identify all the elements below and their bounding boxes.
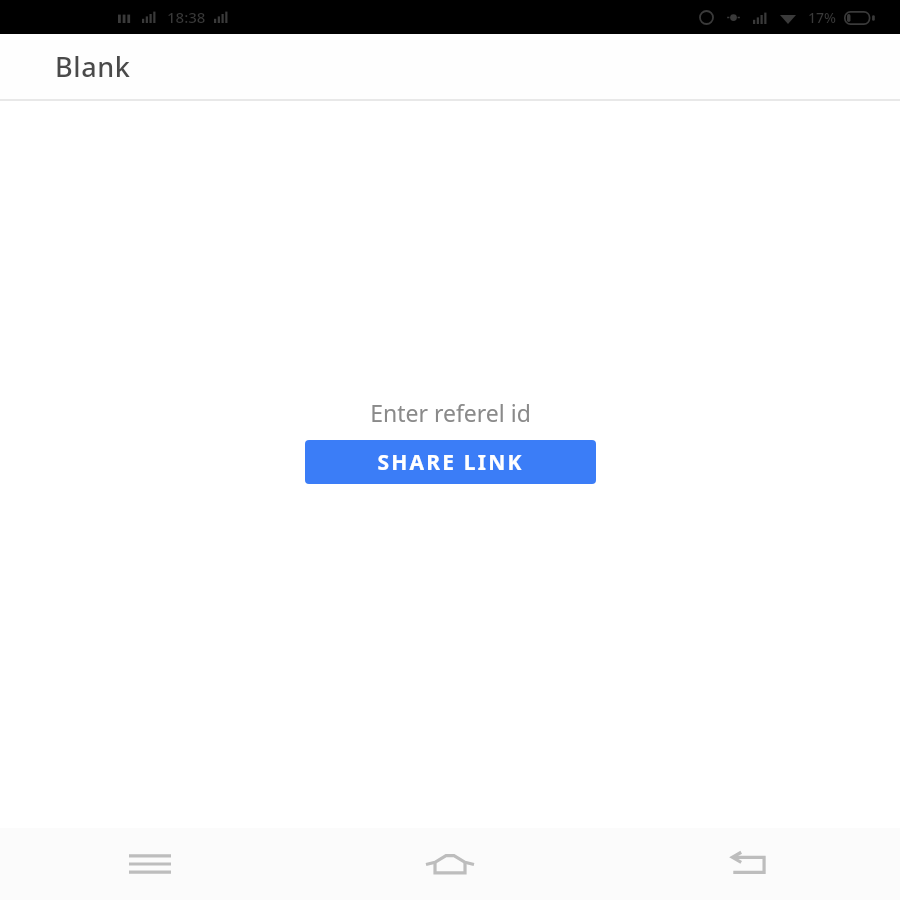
button[interactable]: Recents xyxy=(0,828,300,900)
staticText: 18:38 xyxy=(167,7,206,27)
staticText: 17% xyxy=(808,8,836,27)
button[interactable]: Back xyxy=(600,828,900,900)
staticText: Enter referel id xyxy=(370,397,531,428)
staticText: Blank xyxy=(55,48,131,85)
button[interactable]: Home xyxy=(300,828,600,900)
staticText: SHARE LINK xyxy=(377,448,524,477)
button[interactable]: SHARE LINK xyxy=(305,440,596,484)
